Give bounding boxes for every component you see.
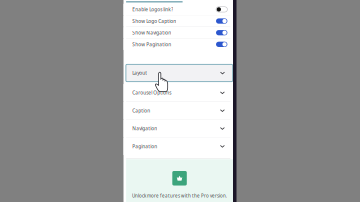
- staticText: Show Navigation: [132, 29, 171, 36]
- staticText: Navigation: [132, 125, 157, 132]
- staticText: Enable Logos link?: [132, 6, 173, 13]
- button[interactable]: Navigation: [123, 120, 233, 137]
- button[interactable]: Caption: [123, 102, 233, 119]
- button[interactable]: Carousel Options: [123, 84, 233, 101]
- button[interactable]: Show Navigation: [123, 27, 233, 38]
- button[interactable]: Layout: [123, 64, 233, 82]
- button[interactable]: Pagination: [123, 138, 233, 155]
- button[interactable]: Show Logo Caption: [123, 15, 233, 27]
- staticText: Caption: [132, 107, 150, 114]
- staticText: Show Pagination: [132, 41, 171, 47]
- button[interactable]: Show Pagination: [123, 39, 233, 50]
- staticText: Layout: [132, 70, 147, 76]
- button[interactable]: Enable Logos link?: [123, 4, 233, 15]
- staticText: Show Logo Caption: [132, 18, 176, 24]
- staticText: Pagination: [132, 143, 157, 149]
- staticText: Carousel Options: [132, 89, 171, 96]
- staticText: Unlock more features with the Pro versio…: [132, 193, 227, 199]
